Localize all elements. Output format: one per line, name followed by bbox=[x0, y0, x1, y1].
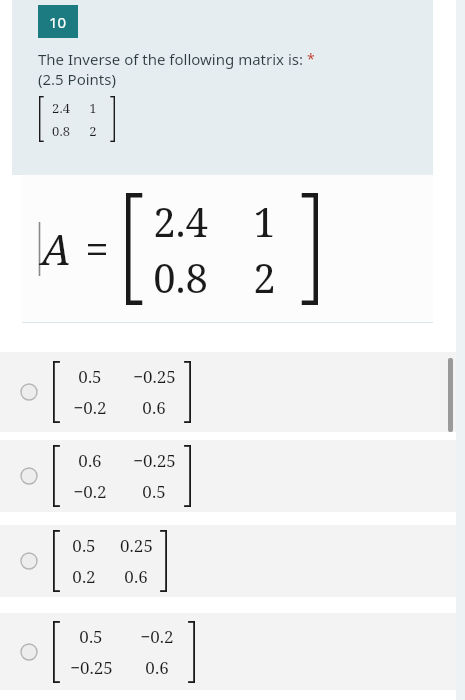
staticText: −0.25 bbox=[70, 656, 113, 679]
staticText: 0.8 bbox=[153, 250, 208, 304]
staticText: 0.6 bbox=[78, 449, 102, 472]
staticText: * bbox=[307, 49, 315, 68]
staticText: 0.8 bbox=[52, 122, 70, 140]
staticText: −0.25 bbox=[133, 365, 176, 388]
staticText: 2 bbox=[253, 250, 276, 304]
staticText: 2.4 bbox=[153, 194, 208, 248]
button[interactable]: Option 2 bbox=[0, 440, 465, 512]
staticText: 0.6 bbox=[142, 396, 166, 419]
staticText: 2.4 bbox=[52, 99, 70, 117]
staticText: −0.2 bbox=[73, 480, 107, 503]
staticText: −0.2 bbox=[73, 396, 107, 419]
staticText: The Inverse of the following matrix is: bbox=[38, 49, 307, 69]
staticText: 2 bbox=[89, 122, 97, 140]
staticText: A bbox=[41, 220, 71, 277]
staticText: 1 bbox=[89, 99, 97, 117]
staticText: 0.6 bbox=[124, 565, 148, 588]
staticText: −0.2 bbox=[140, 625, 174, 648]
button[interactable]: Option 3 bbox=[0, 525, 465, 597]
staticText: 0.6 bbox=[145, 656, 169, 679]
staticText: 10 bbox=[49, 12, 67, 32]
button[interactable]: Option 1 bbox=[0, 352, 465, 432]
staticText: −0.25 bbox=[133, 449, 176, 472]
staticText: (2.5 Points) bbox=[38, 69, 116, 89]
staticText: 0.5 bbox=[142, 480, 166, 503]
staticText: 0.5 bbox=[79, 625, 103, 648]
staticText: 0.5 bbox=[72, 534, 96, 557]
staticText: 0.25 bbox=[120, 534, 153, 557]
staticText: 0.5 bbox=[78, 365, 102, 388]
staticText: 0.2 bbox=[72, 565, 96, 588]
staticText: = bbox=[85, 220, 109, 277]
staticText: 1 bbox=[253, 194, 276, 248]
button[interactable]: Option 4 bbox=[0, 613, 465, 690]
